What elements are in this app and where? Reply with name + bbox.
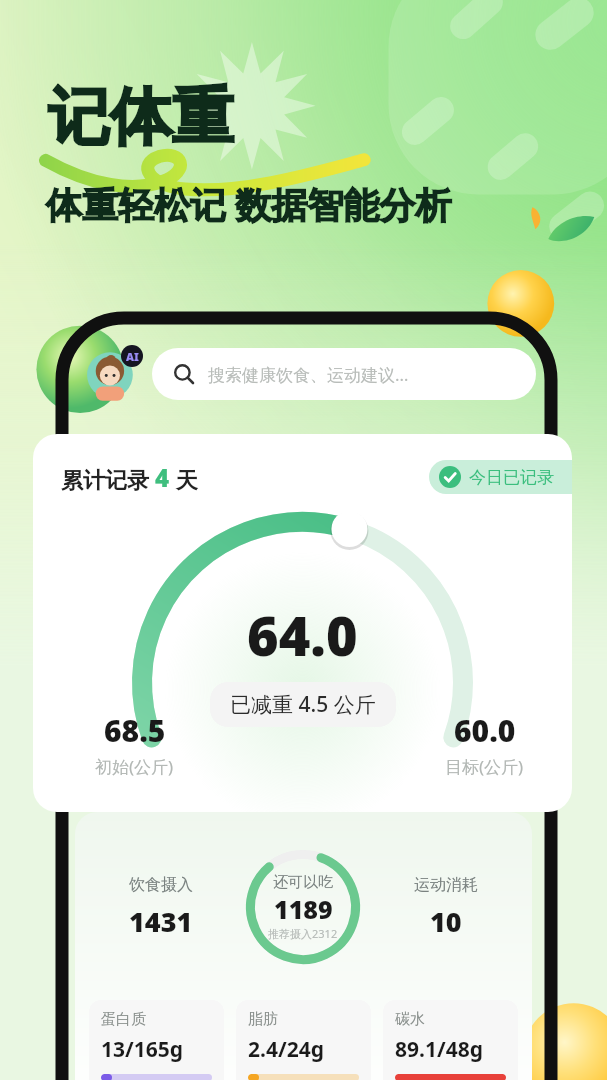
staticText: AI (126, 349, 139, 364)
staticText: 记体重 (48, 78, 234, 156)
staticText: 1431 (129, 903, 193, 940)
staticText: 89.1/48g (395, 1035, 483, 1064)
staticText: 目标(公斤) (445, 755, 524, 778)
staticText: 体重轻松记 数据智能分析 (46, 180, 452, 229)
staticText: 10 (430, 903, 462, 940)
button[interactable]: AI 助手头像 (86, 348, 138, 400)
staticText: 68.5 (104, 710, 166, 751)
staticText: 60.0 (454, 710, 516, 751)
staticText: 4 (155, 461, 170, 494)
staticText: 碳水 (395, 1010, 425, 1029)
staticText: 初始(公斤) (95, 755, 174, 778)
button[interactable]: 累计记录 (33, 434, 572, 812)
staticText: 2.4/24g (248, 1035, 324, 1064)
staticText: 天 (170, 464, 198, 494)
button[interactable]: 碳水 (383, 1000, 518, 1080)
staticText: 推荐摄入2312 (268, 926, 338, 941)
button[interactable]: 搜索健康饮食、运动建议… (152, 348, 536, 400)
button[interactable]: 蛋白质 (89, 1000, 224, 1080)
staticText: 13/165g (101, 1035, 184, 1064)
staticText: 脂肪 (248, 1010, 278, 1029)
button[interactable]: 今日已记录 (429, 460, 572, 494)
staticText: 搜索健康饮食、运动建议… (208, 363, 409, 386)
staticText: 已减重 4.5 公斤 (230, 690, 376, 719)
button[interactable]: 脂肪 (236, 1000, 371, 1080)
staticText: 蛋白质 (101, 1010, 146, 1029)
staticText: 64.0 (247, 598, 358, 672)
staticText: 累计记录 (61, 464, 155, 494)
staticText: 1189 (274, 892, 333, 926)
staticText: 还可以吃 (273, 873, 333, 892)
staticText: 今日已记录 (469, 467, 554, 488)
staticText: 饮食摄入 (129, 875, 193, 895)
staticText: 运动消耗 (414, 875, 478, 895)
